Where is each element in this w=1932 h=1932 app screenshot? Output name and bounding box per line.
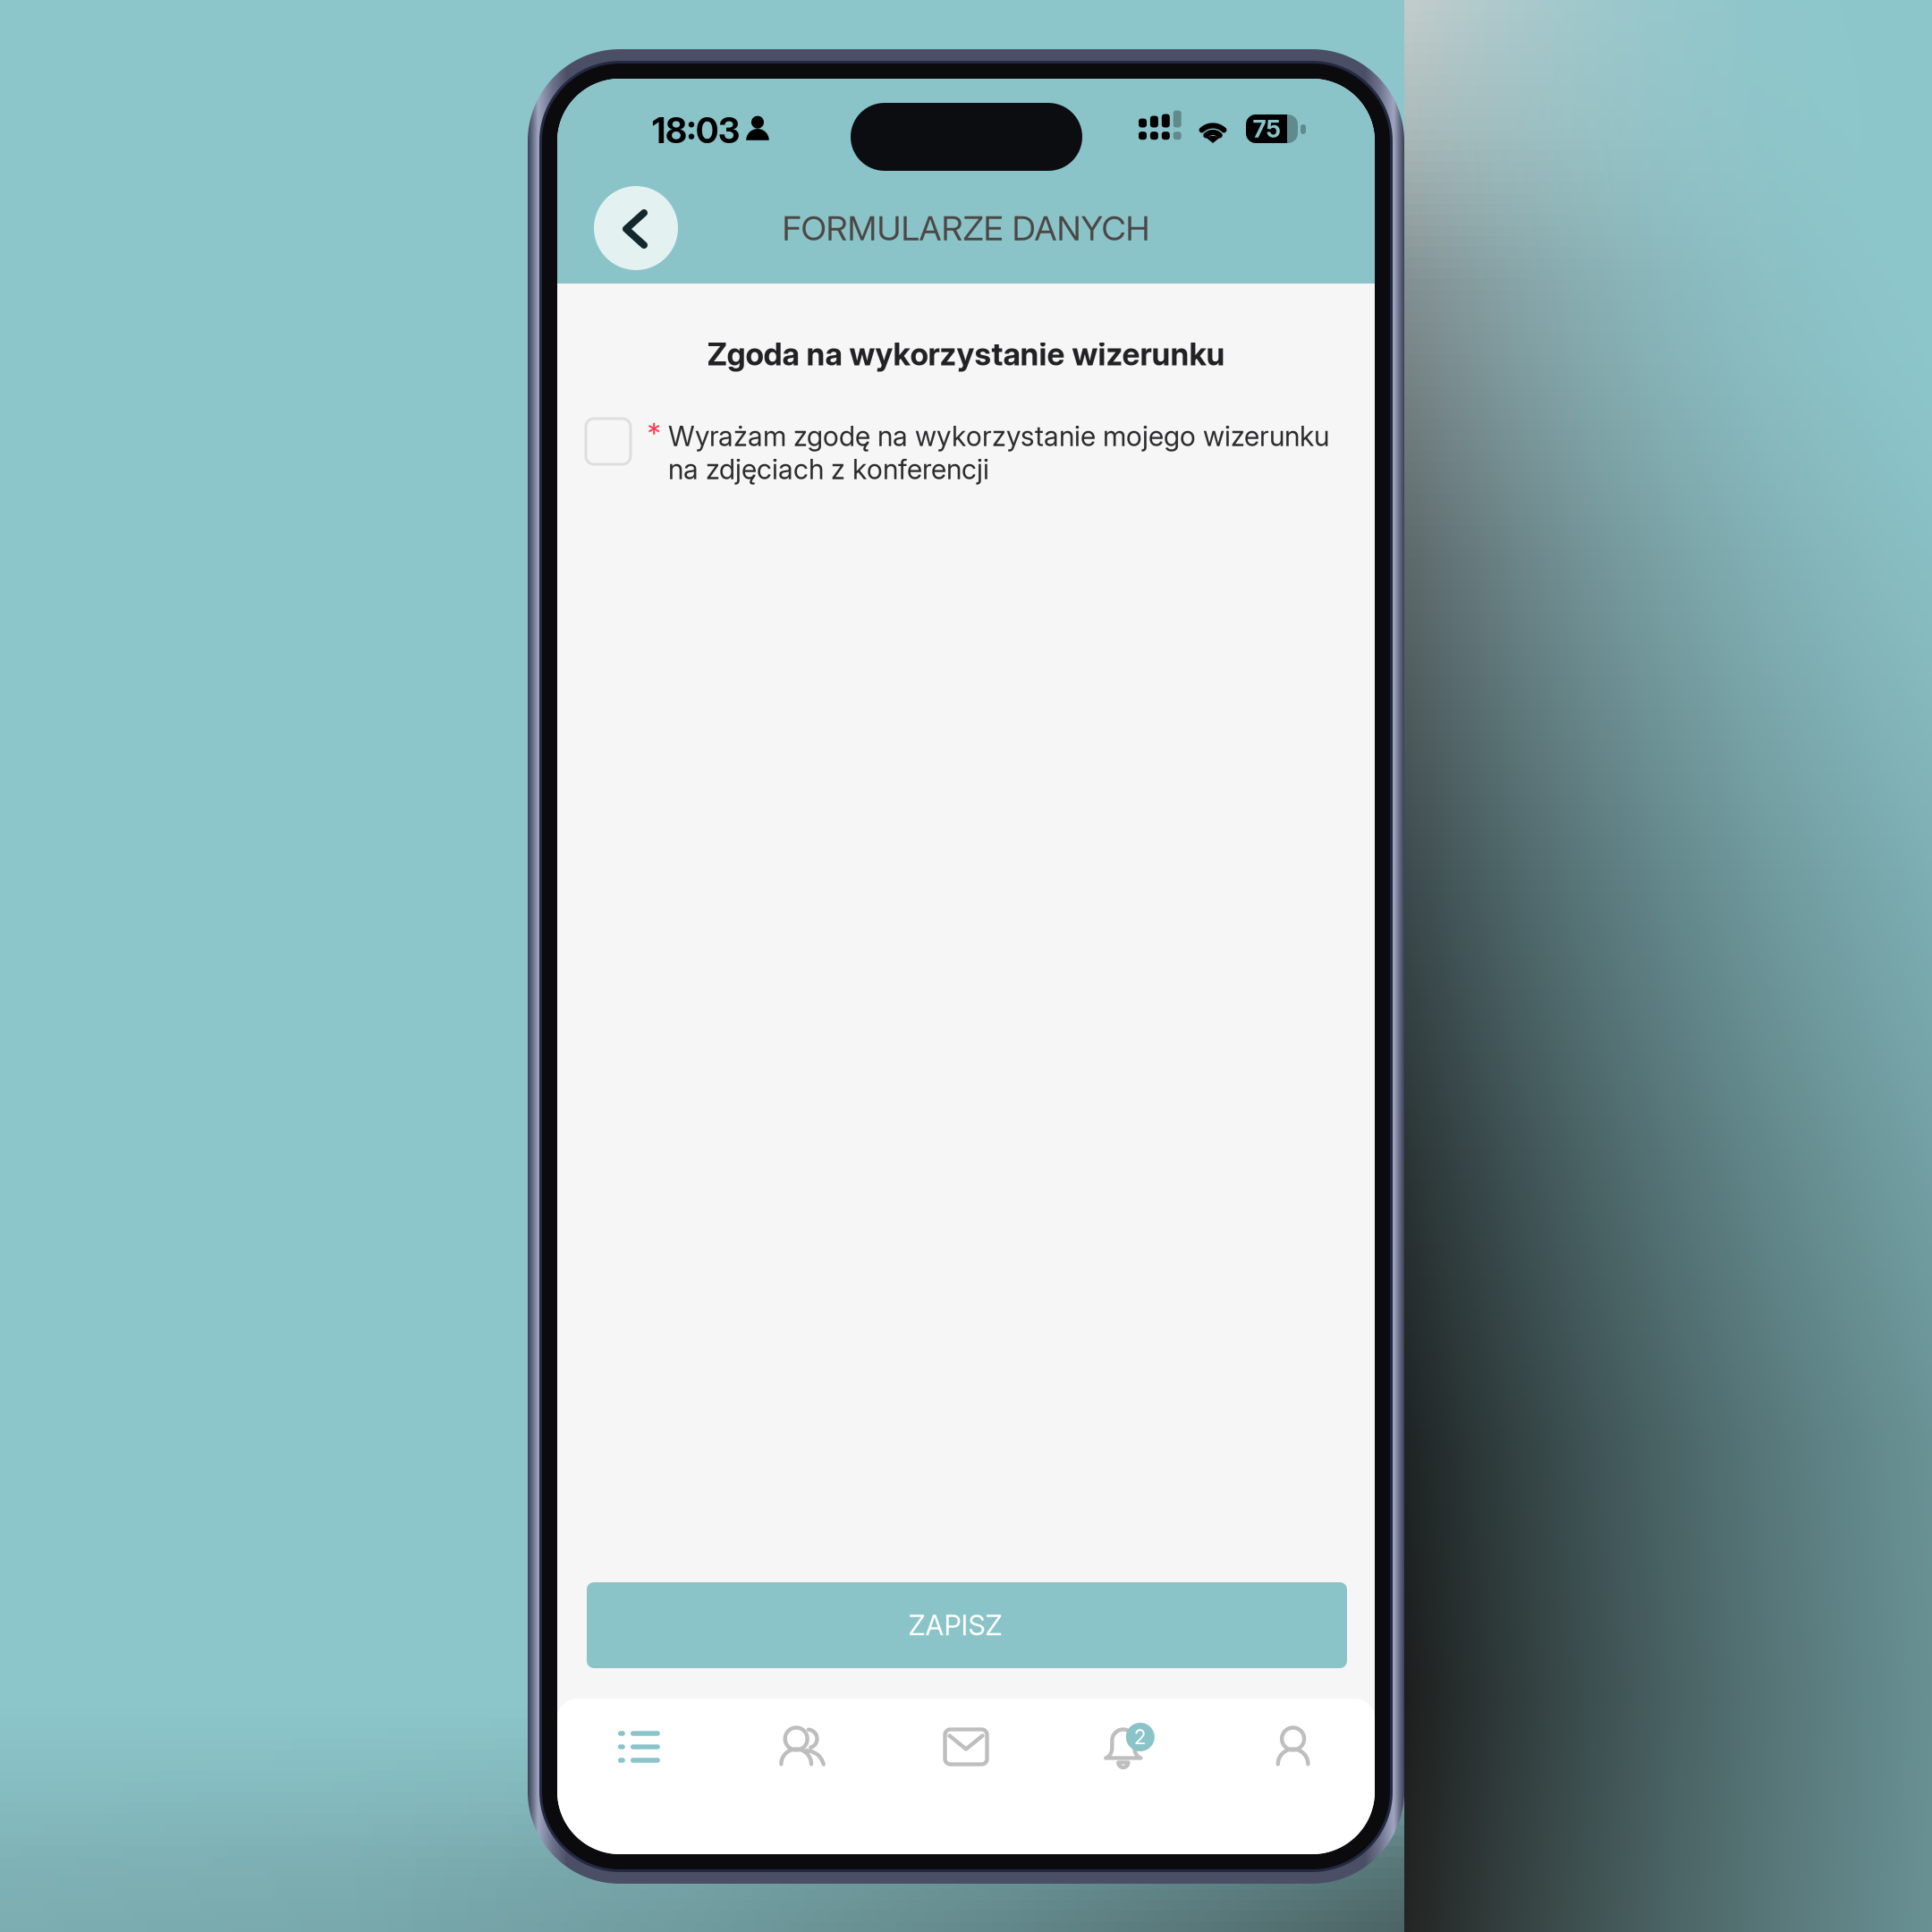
button[interactable]: Powiadomienia bbox=[1048, 1711, 1211, 1783]
staticText: * bbox=[647, 416, 661, 450]
staticText: Wyrażam zgodę na wykorzystanie mojego wi… bbox=[668, 419, 1329, 486]
staticText: FORMULARZE DANYCH bbox=[782, 208, 1150, 249]
button[interactable]: Lista bbox=[557, 1711, 721, 1783]
staticText: 2 bbox=[1134, 1725, 1146, 1749]
button[interactable]: Wstecz bbox=[594, 186, 678, 270]
button[interactable]: Profil bbox=[1211, 1711, 1375, 1783]
staticText: 75 bbox=[1253, 114, 1280, 143]
staticText: ZAPISZ bbox=[908, 1609, 1002, 1642]
button[interactable]: Wiadomości bbox=[884, 1711, 1048, 1783]
button[interactable]: Uczestnicy bbox=[721, 1711, 884, 1783]
staticText: Zgoda na wykorzystanie wizerunku bbox=[707, 335, 1225, 373]
staticText: 18:03 bbox=[652, 110, 740, 152]
button[interactable]: Zgoda na wykorzystanie wizerunku bbox=[586, 419, 631, 464]
button[interactable]: ZAPISZ bbox=[587, 1582, 1347, 1668]
